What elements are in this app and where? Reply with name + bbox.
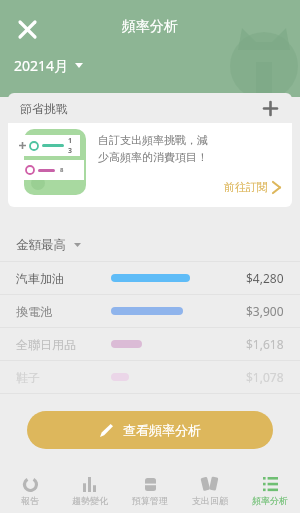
staticText: $1,618 xyxy=(246,336,284,352)
staticText: 頻率分析 xyxy=(122,18,178,36)
button[interactable]: 汽車加油 xyxy=(16,262,284,294)
button[interactable]: 頻率分析 xyxy=(240,469,300,513)
button[interactable]: Add xyxy=(260,98,280,118)
staticText: 頻率分析 xyxy=(252,495,288,506)
staticText: 汽車加油 xyxy=(16,271,64,286)
button[interactable]: 支出回顧 xyxy=(180,469,240,513)
staticText: 鞋子 xyxy=(16,370,40,385)
staticText: 少高頻率的消費項目！ xyxy=(98,150,208,164)
button[interactable]: 金額最高 xyxy=(16,229,300,261)
button[interactable]: 換電池 xyxy=(16,295,284,327)
staticText: $1,078 xyxy=(246,369,284,385)
staticText: 換電池 xyxy=(16,304,52,319)
button[interactable]: 20214月 xyxy=(14,56,83,75)
staticText: 查看頻率分析 xyxy=(123,422,201,438)
staticText: 報告 xyxy=(21,495,39,506)
staticText: 全聯日用品 xyxy=(16,337,76,352)
button[interactable]: 預算管理 xyxy=(120,469,180,513)
button[interactable]: 節省挑戰 xyxy=(20,93,280,123)
button[interactable]: 鞋子 xyxy=(16,361,284,393)
staticText: 金額最高 xyxy=(16,237,66,253)
button[interactable]: 查看頻率分析 xyxy=(27,411,273,449)
staticText: 8 xyxy=(60,166,64,174)
button[interactable]: 前往訂閱 xyxy=(224,180,280,194)
button[interactable]: 報告 xyxy=(0,469,60,513)
staticText: $4,280 xyxy=(246,270,284,286)
button[interactable]: 全聯日用品 xyxy=(16,328,284,360)
button[interactable]: 13 xyxy=(20,127,280,199)
staticText: 趨勢變化 xyxy=(72,495,108,506)
staticText: 預算管理 xyxy=(132,495,168,506)
staticText: 13 xyxy=(68,136,75,156)
staticText: 前往訂閱 xyxy=(224,180,268,194)
button[interactable]: 趨勢變化 xyxy=(60,469,120,513)
staticText: 支出回顧 xyxy=(192,495,228,506)
staticText: $3,900 xyxy=(246,303,284,319)
staticText: 20214月 xyxy=(14,56,69,75)
staticText: 自訂支出頻率挑戰，減 xyxy=(98,133,208,147)
button[interactable]: Close xyxy=(12,14,42,44)
staticText: 節省挑戰 xyxy=(20,101,68,116)
